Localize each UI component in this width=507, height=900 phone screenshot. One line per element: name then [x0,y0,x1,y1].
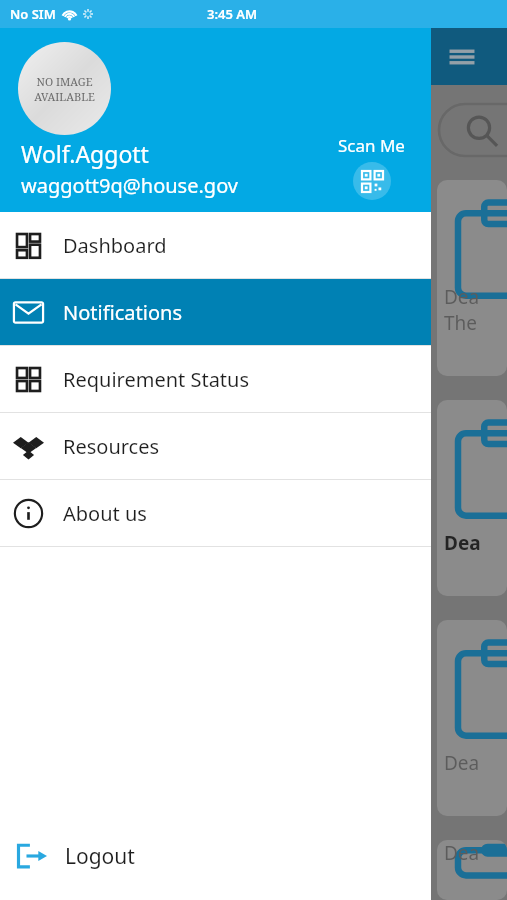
button[interactable]: Open navigation menu [446,41,478,73]
staticText: Wolf.Aggott [21,138,149,169]
staticText: Dashboard [63,232,167,259]
staticText: The [444,310,478,336]
staticText: About us [63,500,147,527]
button[interactable]: Scan Me [338,134,405,200]
button[interactable]: Search [437,102,507,158]
button[interactable]: Requirement Status [0,346,431,412]
button[interactable]: Dea [437,840,507,900]
staticText: NO IMAGE [36,74,93,89]
staticText: Logout [65,842,135,871]
staticText: Scan Me [338,134,405,157]
staticText: 3:45 AM [207,5,258,23]
button[interactable]: Notifications [0,279,431,345]
staticText: No SIM [10,5,56,23]
staticText: Dea [444,530,481,556]
button[interactable]: Dea [437,620,507,816]
staticText: Requirement Status [63,366,250,393]
button[interactable]: Logout [0,820,431,892]
staticText: waggott9q@house.gov [21,172,238,199]
other: Scan QR code [353,162,391,200]
staticText: Notifications [63,299,182,326]
button[interactable]: Resources [0,413,431,479]
button[interactable]: Dea [437,180,507,376]
staticText: Dea [444,840,480,860]
staticText: Dea [444,750,480,776]
button[interactable]: About us [0,480,431,546]
staticText: Resources [63,433,160,460]
button[interactable]: Dea [437,400,507,596]
button[interactable]: Profile photo [18,42,111,135]
staticText: AVAILABLE [34,89,95,104]
button[interactable]: Dashboard [0,212,431,278]
staticText: Dea [444,284,480,310]
